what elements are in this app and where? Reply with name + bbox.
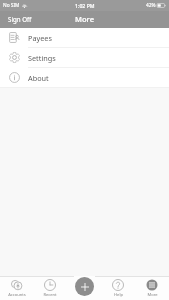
- staticText: Help: [114, 292, 123, 298]
- staticText: More: [75, 14, 95, 24]
- button[interactable]: More: [135, 277, 169, 300]
- staticText: Settings: [28, 53, 56, 63]
- staticText: More: [147, 292, 158, 298]
- staticText: Accounts: [8, 292, 26, 298]
- button[interactable]: About: [0, 68, 169, 88]
- staticText: 1:02 PM: [75, 2, 95, 9]
- staticText: Payees: [28, 33, 52, 43]
- staticText: Recent: [43, 292, 57, 298]
- button[interactable]: Sign Off: [0, 11, 38, 28]
- staticText: About: [28, 73, 49, 83]
- button[interactable]: Payees: [0, 28, 169, 48]
- button[interactable]: Accounts: [0, 277, 33, 300]
- staticText: Sign Off: [8, 15, 32, 23]
- staticText: 42%: [146, 2, 156, 9]
- staticText: No SIM: [3, 2, 20, 9]
- button[interactable]: Recent: [33, 277, 67, 300]
- button[interactable]: Settings: [0, 48, 169, 68]
- button[interactable]: Add: [75, 277, 94, 296]
- button[interactable]: Help: [101, 277, 135, 300]
